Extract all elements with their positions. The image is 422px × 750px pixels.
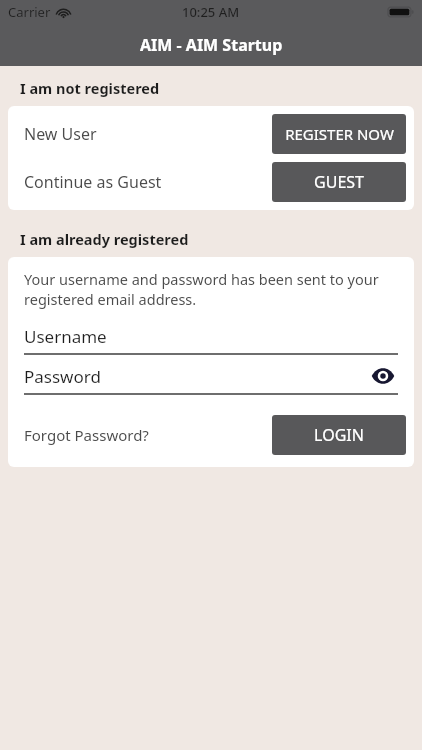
staticText: I am already registered bbox=[20, 229, 189, 249]
staticText: LOGIN bbox=[314, 424, 364, 446]
staticText: Username bbox=[24, 325, 107, 348]
button[interactable]: Forgot Password? bbox=[24, 425, 149, 445]
staticText: Your username and password has been sent… bbox=[24, 269, 398, 309]
button[interactable]: Username bbox=[24, 323, 398, 349]
staticText: REGISTER NOW bbox=[285, 124, 394, 144]
staticText: 10:25 AM bbox=[182, 3, 240, 21]
staticText: GUEST bbox=[314, 171, 364, 193]
button[interactable]: REGISTER NOW bbox=[272, 114, 406, 154]
staticText: Password bbox=[24, 365, 101, 388]
button[interactable]: GUEST bbox=[272, 162, 406, 202]
button[interactable]: Show password bbox=[368, 363, 398, 389]
button[interactable]: LOGIN bbox=[272, 415, 406, 455]
staticText: I am not registered bbox=[20, 78, 160, 98]
staticText: Forgot Password? bbox=[24, 425, 149, 445]
staticText: New User bbox=[24, 123, 97, 145]
staticText: AIM - AIM Startup bbox=[140, 34, 283, 56]
button[interactable]: Password bbox=[24, 363, 398, 389]
staticText: Continue as Guest bbox=[24, 171, 162, 193]
staticText: Carrier bbox=[8, 3, 51, 21]
